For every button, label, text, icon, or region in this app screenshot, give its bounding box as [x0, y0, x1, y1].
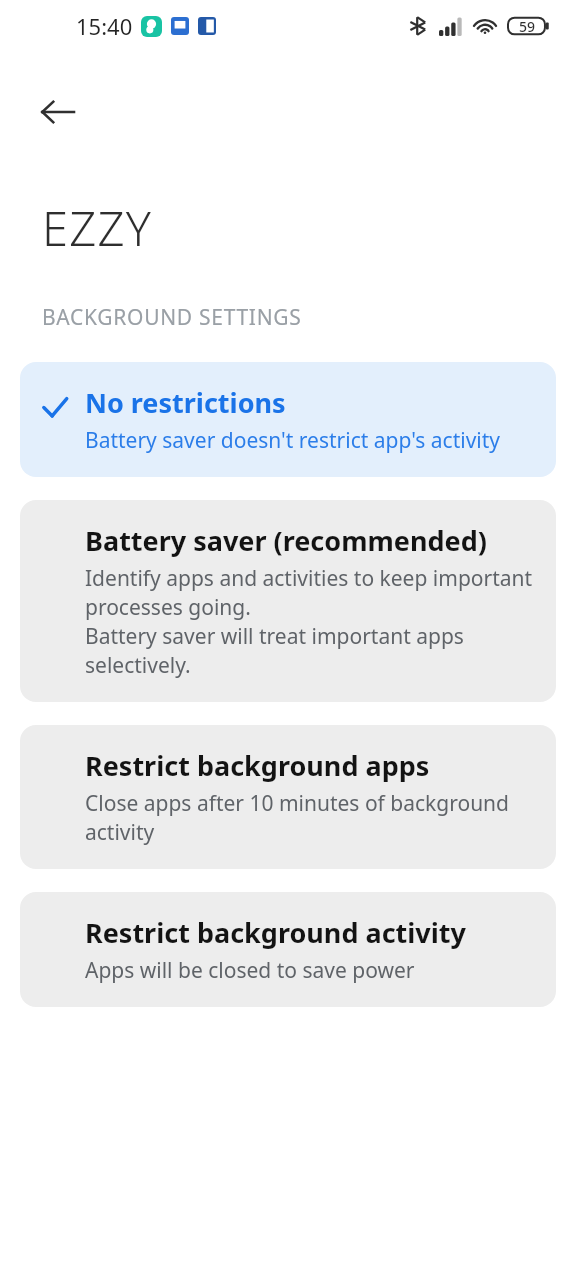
staticText: selectively. [85, 651, 191, 680]
staticText: Restrict background activity [85, 914, 466, 951]
button[interactable]: No restrictions [20, 362, 556, 477]
staticText: Identify apps and activities to keep imp… [85, 564, 533, 593]
staticText: No restrictions [85, 384, 286, 421]
staticText: Close apps after 10 minutes of backgroun… [85, 789, 510, 818]
staticText: 15:40 [76, 11, 133, 41]
staticText: Apps will be closed to save power [85, 956, 415, 985]
staticText: Battery saver (recommended) [85, 522, 487, 559]
staticText: activity [85, 818, 155, 847]
staticText: processes going. [85, 593, 251, 622]
staticText: Battery saver doesn't restrict app's act… [85, 426, 501, 455]
button[interactable]: Restrict background apps [20, 725, 556, 869]
staticText: BACKGROUND SETTINGS [42, 303, 302, 332]
staticText: Restrict background apps [85, 747, 430, 784]
button[interactable]: Battery saver (recommended) [20, 500, 556, 702]
button[interactable]: Back [24, 78, 92, 146]
staticText: EZZY [42, 196, 152, 260]
staticText: Battery saver will treat important apps [85, 622, 464, 651]
staticText: 59 [519, 17, 536, 36]
button[interactable]: Restrict background activity [20, 892, 556, 1007]
